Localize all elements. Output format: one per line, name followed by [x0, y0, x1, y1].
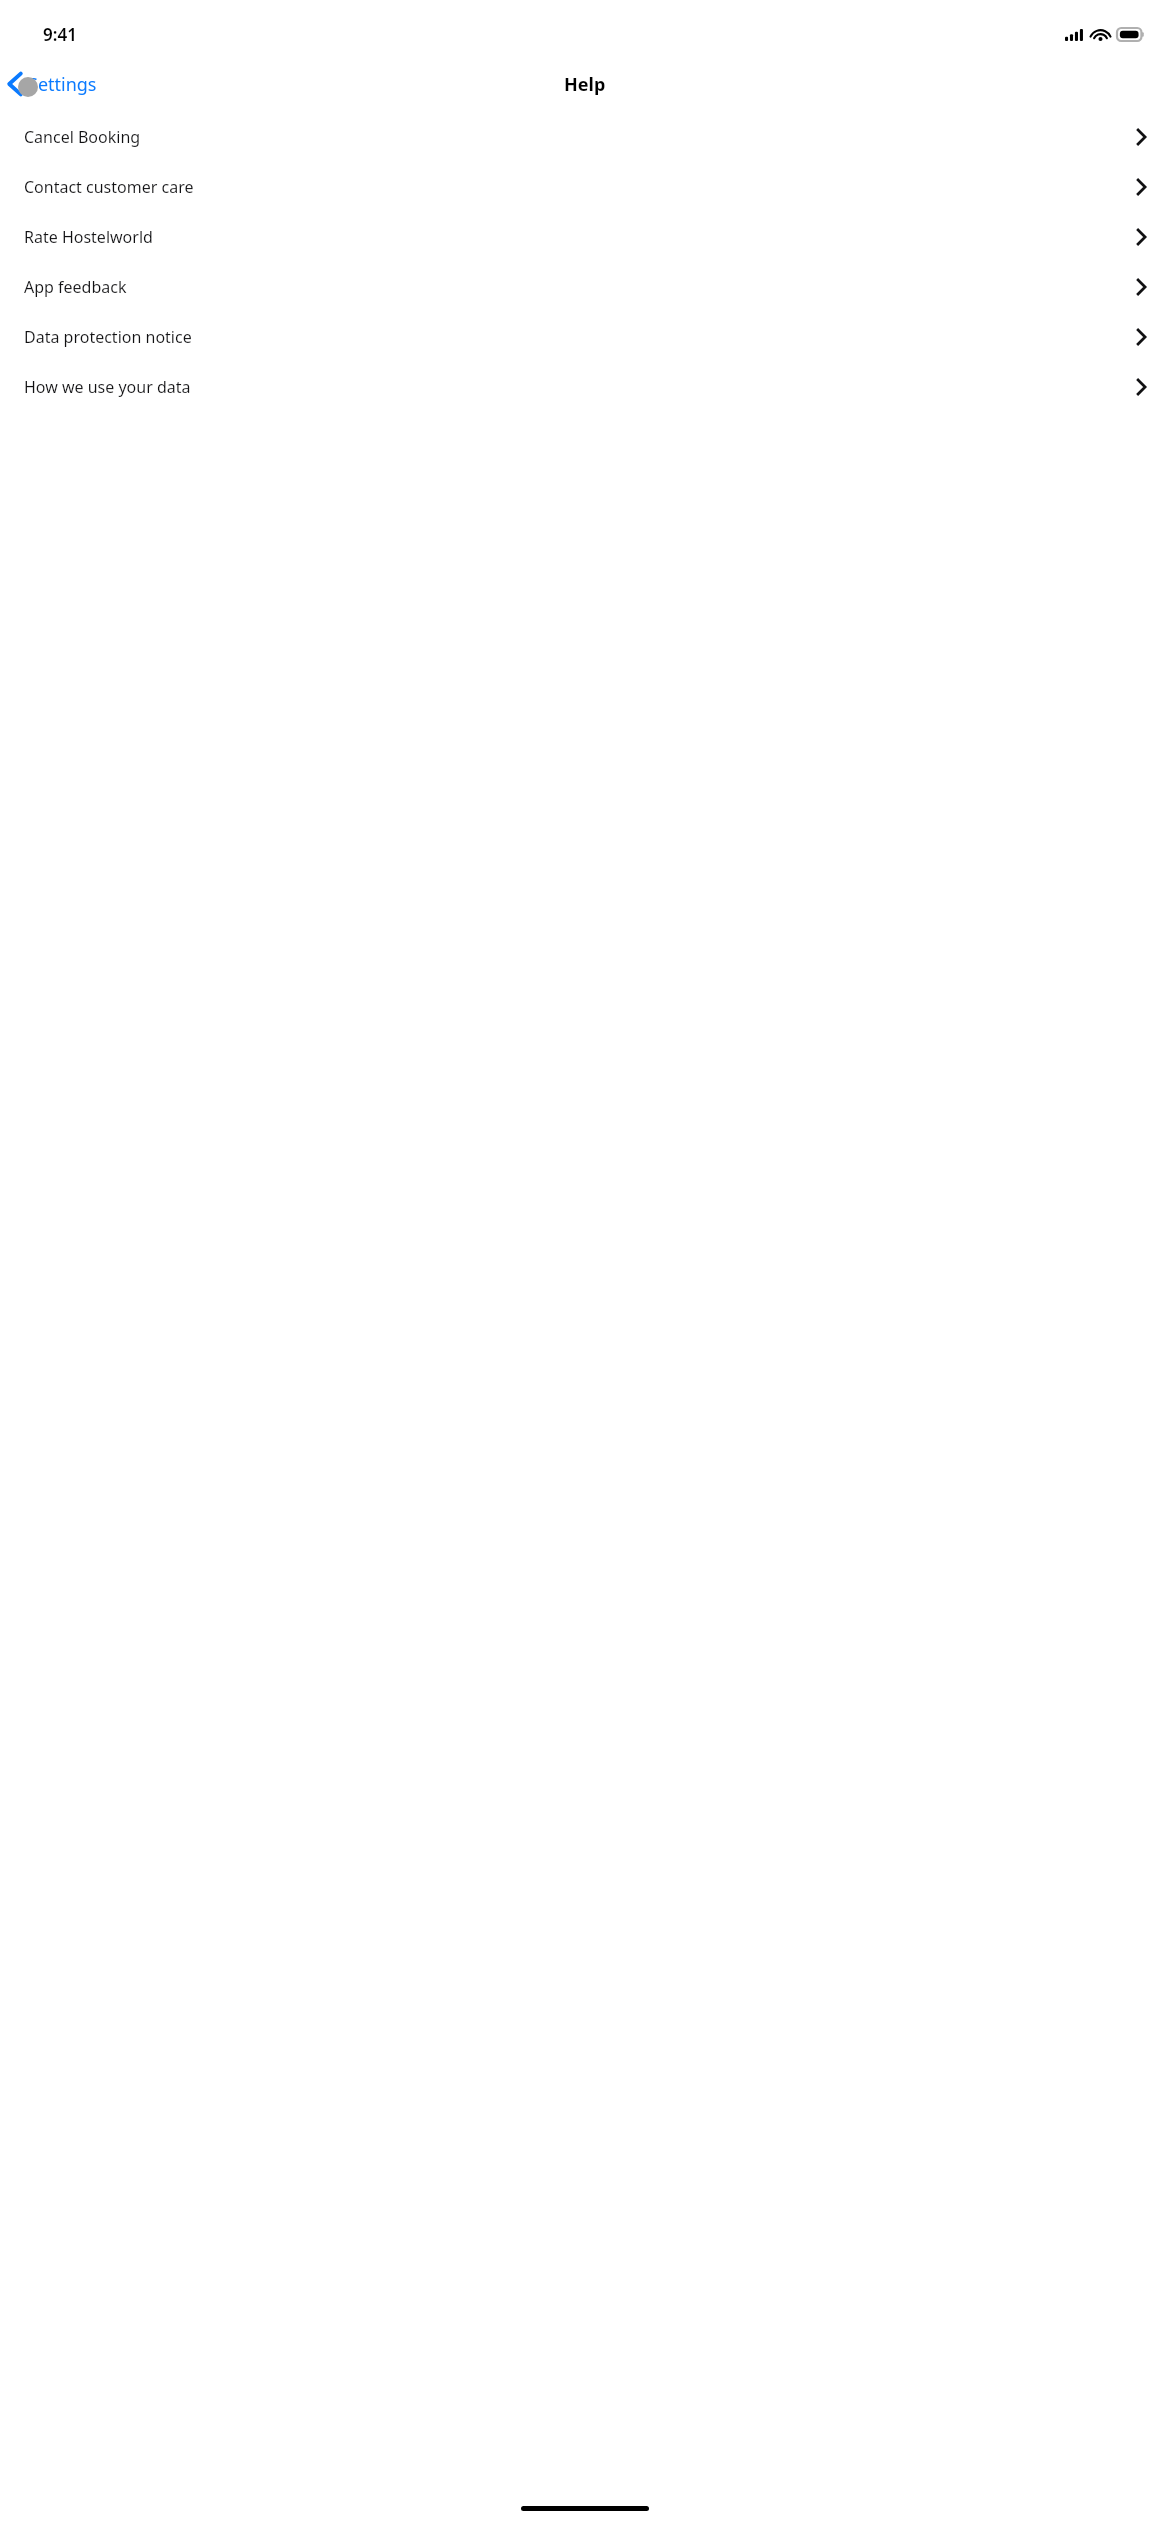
button[interactable]: Rate Hostelworld — [0, 212, 1170, 262]
button[interactable]: Data protection notice — [0, 312, 1170, 362]
staticText: How we use your data — [24, 376, 191, 398]
staticText: Data protection notice — [24, 326, 192, 348]
staticText: Cancel Booking — [24, 126, 141, 148]
staticText: App feedback — [24, 276, 127, 298]
button[interactable]: Back — [0, 67, 107, 101]
button[interactable]: Contact customer care — [0, 162, 1170, 212]
button[interactable]: How we use your data — [0, 362, 1170, 412]
staticText: 9:41 — [43, 23, 77, 46]
staticText: Rate Hostelworld — [24, 226, 153, 248]
staticText: Contact customer care — [24, 176, 194, 198]
button[interactable]: App feedback — [0, 262, 1170, 312]
other: Back — [7, 71, 23, 97]
staticText: Settings — [28, 72, 97, 97]
staticText: Help — [564, 72, 606, 97]
button[interactable]: Cancel Booking — [0, 112, 1170, 162]
